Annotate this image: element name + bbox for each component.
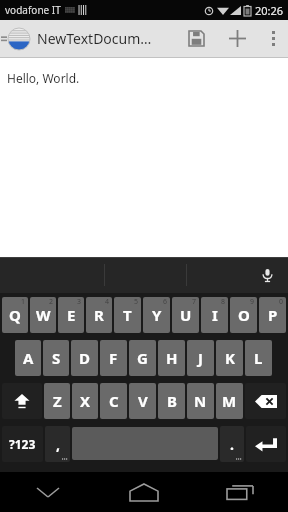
button[interactable]: New — [216, 20, 258, 57]
button[interactable]: R — [86, 297, 112, 333]
button[interactable]: A — [15, 340, 41, 376]
button[interactable]: . — [220, 426, 244, 462]
button[interactable]: X — [72, 383, 98, 419]
staticText: V — [138, 391, 148, 411]
button[interactable]: E — [58, 297, 84, 333]
staticText: 1 — [21, 297, 26, 307]
button[interactable]: B — [158, 383, 185, 419]
staticText: 3 — [77, 297, 82, 307]
button[interactable]: , — [45, 426, 70, 462]
staticText: 6 — [163, 297, 168, 307]
button[interactable]: Enter — [246, 426, 286, 462]
staticText: 9 — [250, 297, 255, 307]
staticText: 20:26 — [255, 3, 284, 18]
button[interactable]: Q — [2, 297, 28, 333]
staticText: A — [23, 348, 34, 368]
button[interactable]: L — [245, 340, 272, 376]
button[interactable]: H — [158, 340, 185, 376]
button[interactable]: Navigate up — [0, 28, 32, 50]
button[interactable]: P — [259, 297, 286, 333]
staticText: P — [268, 305, 278, 325]
staticText: W — [36, 305, 51, 325]
staticText: , — [56, 435, 60, 454]
staticText: Z — [53, 391, 62, 411]
button[interactable]: Y — [143, 297, 170, 333]
staticText: 7 — [192, 297, 197, 307]
staticText: Hello, World. — [7, 70, 80, 86]
button[interactable]: J — [187, 340, 214, 376]
staticText: ?123 — [9, 436, 36, 452]
staticText: N — [194, 391, 207, 411]
button[interactable]: S — [43, 340, 69, 376]
button[interactable]: Voice input — [256, 264, 278, 286]
staticText: I — [212, 305, 218, 325]
button[interactable]: Z — [44, 383, 70, 419]
button[interactable]: D — [71, 340, 98, 376]
staticText: Y — [152, 305, 162, 325]
button[interactable]: More options — [258, 20, 288, 57]
staticText: . — [230, 435, 234, 454]
button[interactable]: K — [216, 340, 243, 376]
staticText: 5 — [134, 297, 139, 307]
button[interactable]: Hide keyboard — [0, 472, 96, 512]
button[interactable]: F — [100, 340, 127, 376]
staticText: 2 — [49, 297, 54, 307]
button[interactable]: Recent apps — [192, 472, 288, 512]
button[interactable]: Shift — [2, 383, 42, 419]
staticText: Q — [9, 305, 21, 325]
staticText: K — [225, 348, 235, 368]
button[interactable]: Home — [96, 472, 192, 512]
button[interactable]: Hello, World. — [0, 58, 288, 257]
button[interactable]: C — [100, 383, 127, 419]
button[interactable]: V — [129, 383, 156, 419]
staticText: S — [52, 348, 61, 368]
staticText: C — [109, 391, 119, 411]
staticText: vodafone IT — [5, 3, 61, 17]
staticText: 4 — [105, 297, 110, 307]
staticText: L — [254, 348, 263, 368]
staticText: X — [80, 391, 91, 411]
staticText: B — [167, 391, 177, 411]
staticText: E — [67, 305, 76, 325]
staticText: J — [198, 348, 203, 368]
staticText: NewTextDocum… — [37, 29, 176, 48]
button[interactable]: M — [216, 383, 243, 419]
staticText: O — [238, 305, 250, 325]
button[interactable]: U — [172, 297, 199, 333]
button[interactable]: Save — [176, 20, 216, 57]
staticText: R — [94, 305, 104, 325]
staticText: U — [180, 305, 192, 325]
button[interactable]: ?123 — [2, 426, 43, 462]
button[interactable]: I — [201, 297, 228, 333]
staticText: M — [222, 391, 237, 411]
button[interactable]: N — [187, 383, 214, 419]
staticText: 8 — [221, 297, 226, 307]
button[interactable]: O — [230, 297, 257, 333]
button[interactable]: G — [129, 340, 156, 376]
button[interactable]: W — [30, 297, 56, 333]
staticText: H — [166, 348, 178, 368]
staticText: 0 — [279, 297, 284, 307]
button[interactable]: Delete — [245, 383, 286, 419]
button[interactable]: T — [114, 297, 141, 333]
staticText: G — [137, 348, 148, 368]
staticText: F — [109, 348, 118, 368]
staticText: T — [123, 305, 132, 325]
staticText: D — [79, 348, 90, 368]
